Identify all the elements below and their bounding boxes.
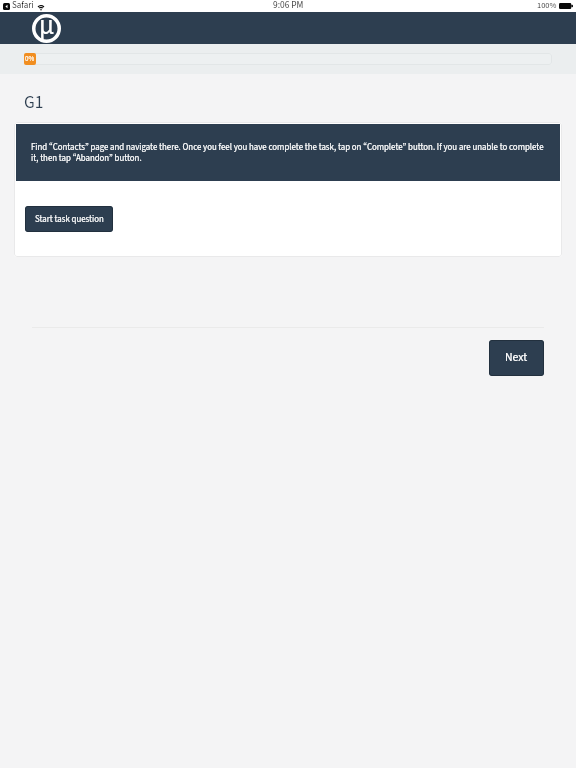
staticText: Next — [505, 351, 528, 365]
staticText: 100% — [537, 1, 557, 11]
button[interactable]: Progress 0 percent — [24, 53, 36, 65]
staticText: 9:06 PM — [273, 1, 304, 11]
staticText: Start task question — [35, 214, 104, 225]
button[interactable]: Back to Safari — [3, 3, 10, 10]
button[interactable]: Next — [489, 340, 544, 376]
staticText: G1 — [24, 94, 44, 114]
staticText: Safari — [12, 1, 34, 11]
staticText: μ — [39, 13, 55, 42]
button[interactable]: Start task question — [25, 206, 113, 232]
staticText: Find “Contacts” page and navigate there.… — [31, 142, 549, 164]
staticText: 0% — [25, 55, 35, 63]
button[interactable]: Home — [32, 14, 61, 43]
